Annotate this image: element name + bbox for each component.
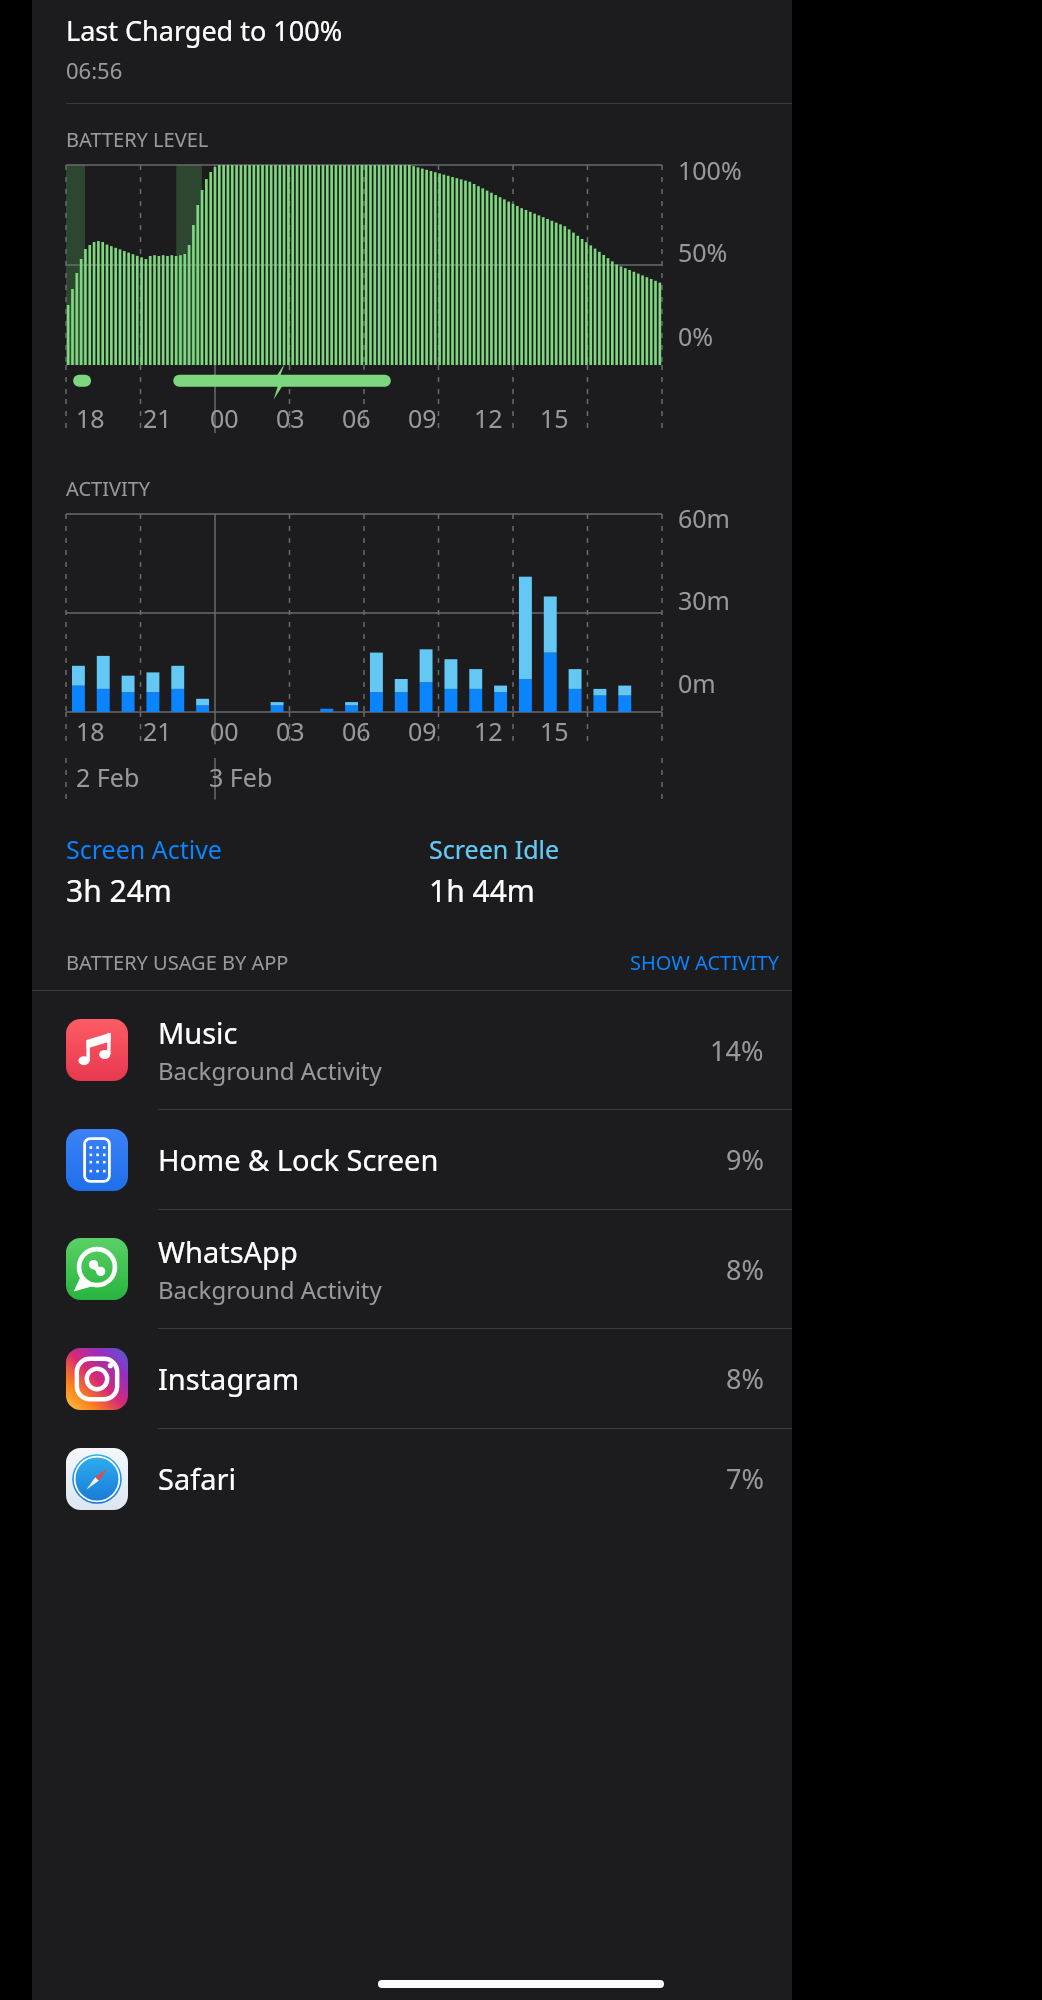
- staticText: ACTIVITY: [66, 475, 151, 502]
- other: Safari: [66, 1448, 128, 1510]
- staticText: 03: [276, 401, 305, 435]
- staticText: 8%: [726, 1360, 764, 1397]
- staticText: BATTERY USAGE BY APP: [66, 949, 289, 976]
- staticText: 100%: [678, 153, 742, 187]
- staticText: 0%: [678, 319, 714, 353]
- staticText: 12: [474, 714, 503, 748]
- staticText: SHOW ACTIVITY: [630, 949, 780, 976]
- staticText: 60m: [678, 501, 730, 535]
- staticText: Safari: [158, 1459, 236, 1498]
- staticText: 09: [408, 714, 437, 748]
- staticText: 3 Feb: [209, 760, 273, 794]
- staticText: Last Charged to 100%: [66, 12, 343, 49]
- button[interactable]: Instagram: [32, 1329, 792, 1429]
- staticText: 15: [540, 401, 569, 435]
- staticText: Screen Idle: [429, 832, 560, 866]
- staticText: 1h 44m: [429, 870, 535, 911]
- staticText: 0m: [678, 666, 716, 700]
- staticText: 7%: [726, 1460, 764, 1497]
- other: WhatsApp: [66, 1238, 128, 1300]
- staticText: Instagram: [158, 1359, 299, 1398]
- staticText: Background Activity: [158, 1054, 382, 1087]
- button[interactable]: Safari: [32, 1429, 792, 1528]
- staticText: 06: [342, 401, 371, 435]
- staticText: 09: [408, 401, 437, 435]
- staticText: 9%: [726, 1141, 764, 1178]
- staticText: 21: [143, 401, 172, 435]
- staticText: 00: [210, 714, 239, 748]
- staticText: 8%: [726, 1251, 764, 1288]
- button[interactable]: SHOW ACTIVITY: [630, 949, 780, 976]
- staticText: 30m: [678, 583, 730, 617]
- staticText: 18: [76, 401, 105, 435]
- staticText: Music: [158, 1013, 238, 1052]
- staticText: 14%: [710, 1032, 764, 1069]
- button[interactable]: WhatsApp: [32, 1210, 792, 1329]
- staticText: 06: [342, 714, 371, 748]
- staticText: 50%: [678, 235, 728, 269]
- staticText: 12: [474, 401, 503, 435]
- staticText: 03: [276, 714, 305, 748]
- staticText: Screen Active: [66, 832, 222, 866]
- staticText: 2 Feb: [76, 760, 140, 794]
- button[interactable]: Home and Lock Screen: [32, 1110, 792, 1210]
- other: Instagram: [66, 1348, 128, 1410]
- staticText: 06:56: [66, 55, 123, 85]
- staticText: Background Activity: [158, 1273, 382, 1306]
- other: Home and Lock Screen: [66, 1129, 128, 1191]
- staticText: 18: [76, 714, 105, 748]
- staticText: 3h 24m: [66, 870, 172, 911]
- staticText: Home & Lock Screen: [158, 1140, 439, 1179]
- staticText: 15: [540, 714, 569, 748]
- staticText: 21: [143, 714, 172, 748]
- staticText: WhatsApp: [158, 1232, 298, 1271]
- staticText: 00: [210, 401, 239, 435]
- button[interactable]: Music: [32, 991, 792, 1110]
- staticText: BATTERY LEVEL: [66, 126, 209, 153]
- other: Music: [66, 1019, 128, 1081]
